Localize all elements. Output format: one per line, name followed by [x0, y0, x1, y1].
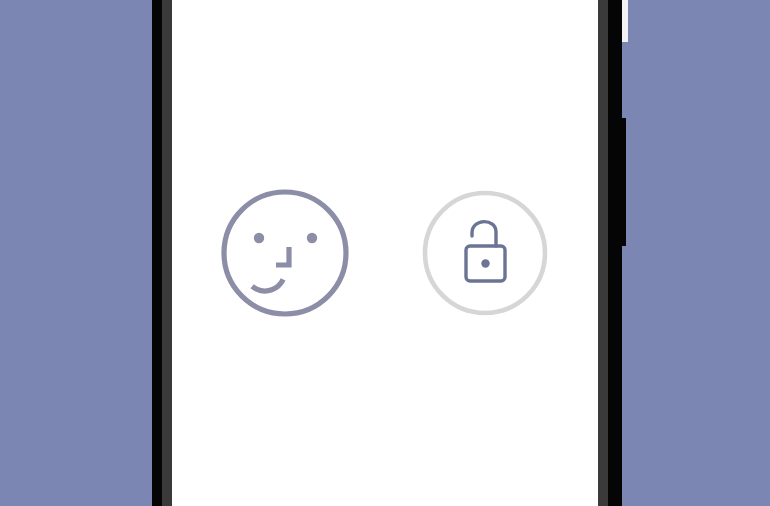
button[interactable]: Face unlock: [0, 0, 770, 506]
button[interactable]: Unlock: [0, 0, 770, 506]
